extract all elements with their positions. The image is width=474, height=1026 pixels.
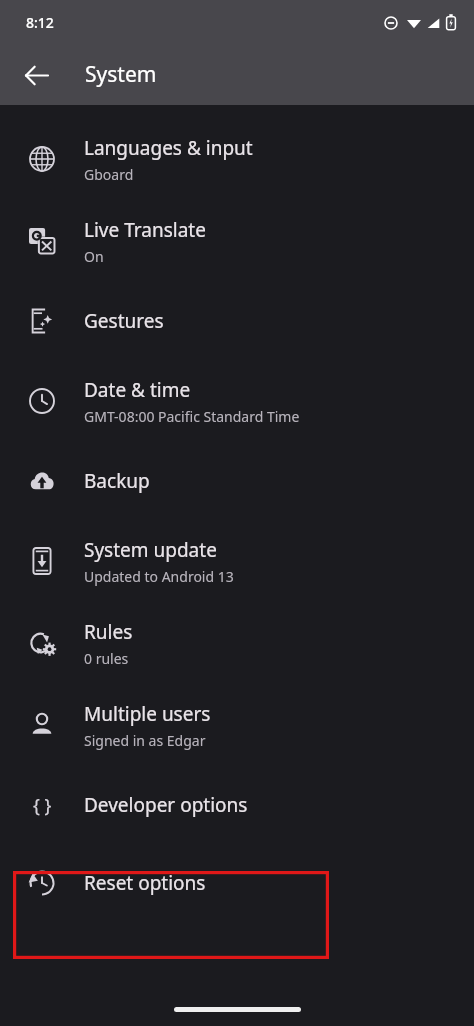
- staticText: Live Translate: [84, 217, 206, 243]
- staticText: Date & time: [84, 377, 191, 403]
- button[interactable]: Live Translate: [0, 200, 474, 282]
- button[interactable]: Languages & input: [0, 118, 474, 200]
- staticText: Gestures: [84, 308, 164, 334]
- staticText: 8:12: [26, 13, 54, 32]
- staticText: Signed in as Edgar: [84, 731, 206, 750]
- staticText: Developer options: [84, 792, 248, 818]
- staticText: GMT-08:00 Pacific Standard Time: [84, 407, 300, 426]
- button[interactable]: Backup: [0, 442, 474, 520]
- staticText: Multiple users: [84, 701, 211, 727]
- button[interactable]: Gestures: [0, 282, 474, 360]
- button[interactable]: { }: [0, 766, 474, 844]
- button[interactable]: Date & time: [0, 360, 474, 442]
- button[interactable]: System update: [0, 520, 474, 602]
- staticText: Rules: [84, 619, 133, 645]
- staticText: Gboard: [84, 165, 134, 184]
- button[interactable]: Rules: [0, 602, 474, 684]
- staticText: On: [84, 247, 104, 266]
- staticText: System update: [84, 537, 217, 563]
- staticText: Languages & input: [84, 135, 253, 161]
- staticText: Reset options: [84, 870, 206, 896]
- staticText: { }: [33, 793, 52, 818]
- staticText: Updated to Android 13: [84, 567, 234, 586]
- staticText: Backup: [84, 468, 150, 494]
- button[interactable]: Multiple users: [0, 684, 474, 766]
- button[interactable]: Reset options: [0, 844, 474, 922]
- staticText: System: [85, 60, 157, 89]
- button[interactable]: Back: [12, 51, 60, 99]
- staticText: 0 rules: [84, 649, 129, 668]
